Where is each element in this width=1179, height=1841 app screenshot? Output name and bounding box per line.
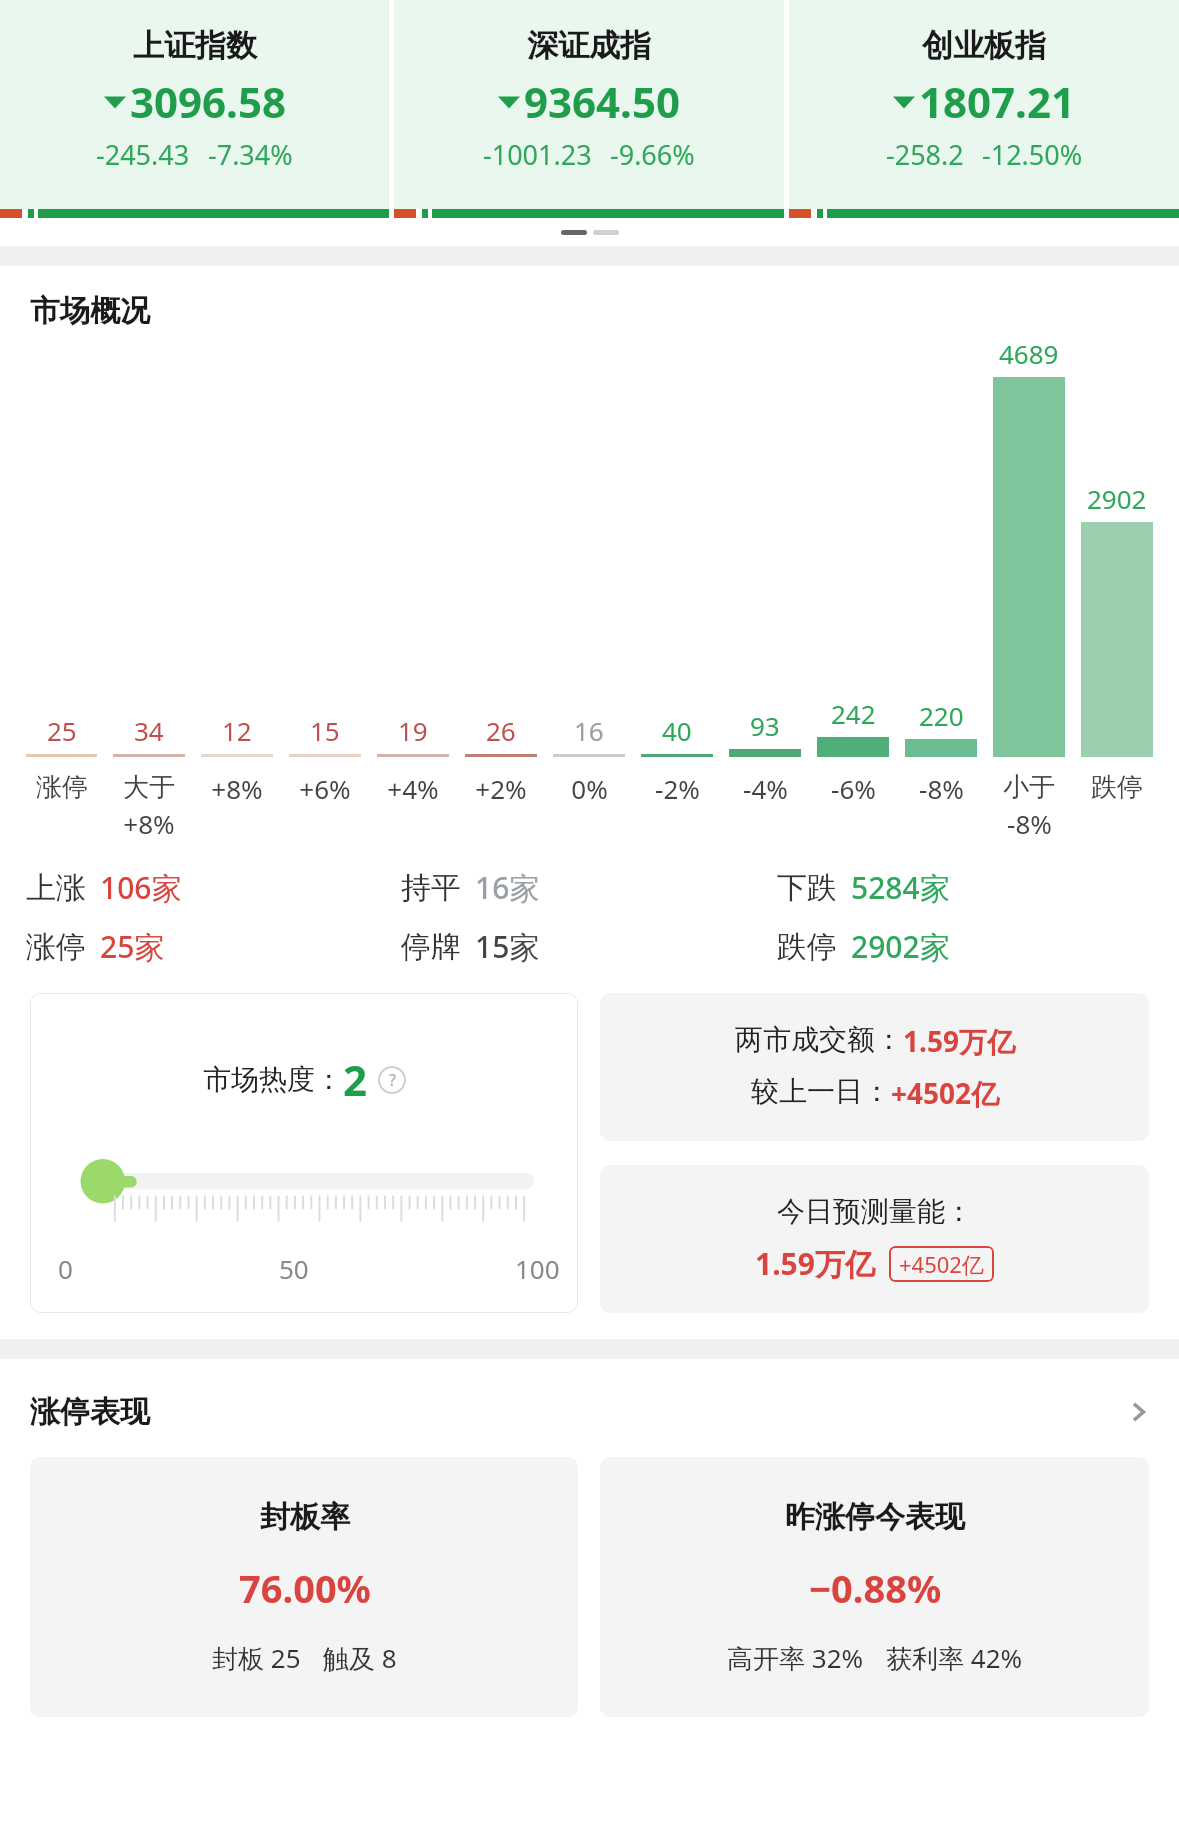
staticText: 26 [486,713,516,748]
staticText: 市场概况 [30,292,150,330]
staticText: 25家 [100,926,165,967]
staticText: -258.2 [886,136,964,173]
staticText: 9364.50 [524,73,680,130]
button[interactable]: 封板率 [30,1457,578,1717]
button[interactable]: 深证成指 [394,0,784,218]
staticText: 触及 8 [323,1640,397,1676]
staticText: 上证指数 [133,26,257,65]
button[interactable]: 涨停表现 [30,1393,1155,1431]
staticText: 40 [662,713,692,748]
staticText: 市场热度： [203,1062,343,1097]
staticText: 0 [58,1251,73,1286]
staticText: −0.88% [809,1562,942,1614]
staticText: ? [389,1069,396,1091]
staticText: 下跌 [777,869,837,907]
staticText: 获利率 42% [886,1640,1023,1676]
staticText: 34 [134,713,164,748]
staticText: -7.34% [208,136,293,173]
staticText: 93 [750,708,780,743]
staticText: 76.00% [239,1562,371,1614]
staticText: 15 [310,713,340,748]
staticText: +4502亿 [891,1074,1000,1112]
staticText: 1.59万亿 [755,1243,875,1284]
staticText: 持平 [401,869,461,907]
staticText: 25 [47,713,77,748]
staticText: -9.66% [610,136,695,173]
staticText: -6% [831,771,876,806]
staticText: 50 [279,1251,309,1286]
staticText: 高开率 32% [727,1640,864,1676]
staticText: 较上一日： [751,1074,891,1109]
staticText: 0% [571,771,608,806]
staticText: +2% [475,771,527,806]
staticText: 小于 [1003,771,1055,804]
staticText: -245.43 [96,136,190,173]
staticText: 1.59万亿 [903,1022,1015,1060]
staticText: 上涨 [26,869,86,907]
staticText: 今日预测量能： [777,1194,973,1229]
staticText: +8% [211,771,263,806]
staticText: 3096.58 [130,73,286,130]
staticText: +4502亿 [899,1249,984,1279]
staticText: 5284家 [851,867,950,908]
staticText: 跌停 [1091,771,1143,804]
staticText: 2902家 [851,926,950,967]
staticText: -12.50% [982,136,1083,173]
staticText: 106家 [100,867,182,908]
staticText: +8% [123,806,175,841]
staticText: 涨停 [26,928,86,966]
button[interactable]: 市场热度： [30,993,578,1313]
staticText: 100 [515,1251,560,1286]
staticText: 15家 [475,926,540,967]
staticText: 19 [398,713,428,748]
staticText: 242 [831,696,876,731]
staticText: -8% [919,771,964,806]
button[interactable]: 帮助 [378,1066,406,1094]
staticText: -2% [655,771,700,806]
staticText: 2902 [1087,481,1147,516]
staticText: 220 [919,698,964,733]
staticText: 涨停 [36,771,88,804]
button[interactable]: 昨涨停今表现 [600,1457,1149,1717]
staticText: +4% [387,771,439,806]
staticText: 封板 25 [212,1640,301,1676]
staticText: 1807.21 [919,73,1075,130]
button[interactable]: 今日预测量能： [600,1165,1149,1313]
staticText: 跌停 [777,928,837,966]
staticText: 12 [222,713,252,748]
staticText: 大于 [123,771,175,804]
staticText: -8% [1007,806,1052,841]
staticText: 2 [343,1051,368,1108]
other: 更多 [1121,1395,1155,1429]
staticText: 深证成指 [527,26,651,65]
staticText: 涨停表现 [30,1393,150,1431]
staticText: 4689 [999,336,1059,371]
staticText: 创业板指 [922,26,1046,65]
staticText: 16 [574,713,604,748]
staticText: -1001.23 [483,136,592,173]
staticText: -4% [743,771,788,806]
button[interactable]: 上证指数 [0,0,389,218]
staticText: 16家 [475,867,540,908]
staticText: 封板率 [260,1498,350,1536]
staticText: 两市成交额： [735,1022,903,1057]
button[interactable]: 两市成交额： [600,993,1149,1141]
staticText: 停牌 [401,928,461,966]
button[interactable]: 创业板指 [789,0,1179,218]
staticText: 昨涨停今表现 [785,1498,965,1536]
staticText: +6% [299,771,351,806]
